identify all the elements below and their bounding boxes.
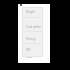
button[interactable]: Cool white — [26, 25, 41, 29]
button[interactable]: Bright — [26, 10, 35, 14]
staticText: Bright — [26, 10, 35, 14]
button[interactable]: Dining — [26, 37, 36, 41]
button[interactable]: Off — [26, 48, 31, 52]
staticText: Cool white — [26, 25, 41, 29]
staticText: Dining — [26, 37, 36, 41]
staticText: Off — [26, 48, 31, 52]
